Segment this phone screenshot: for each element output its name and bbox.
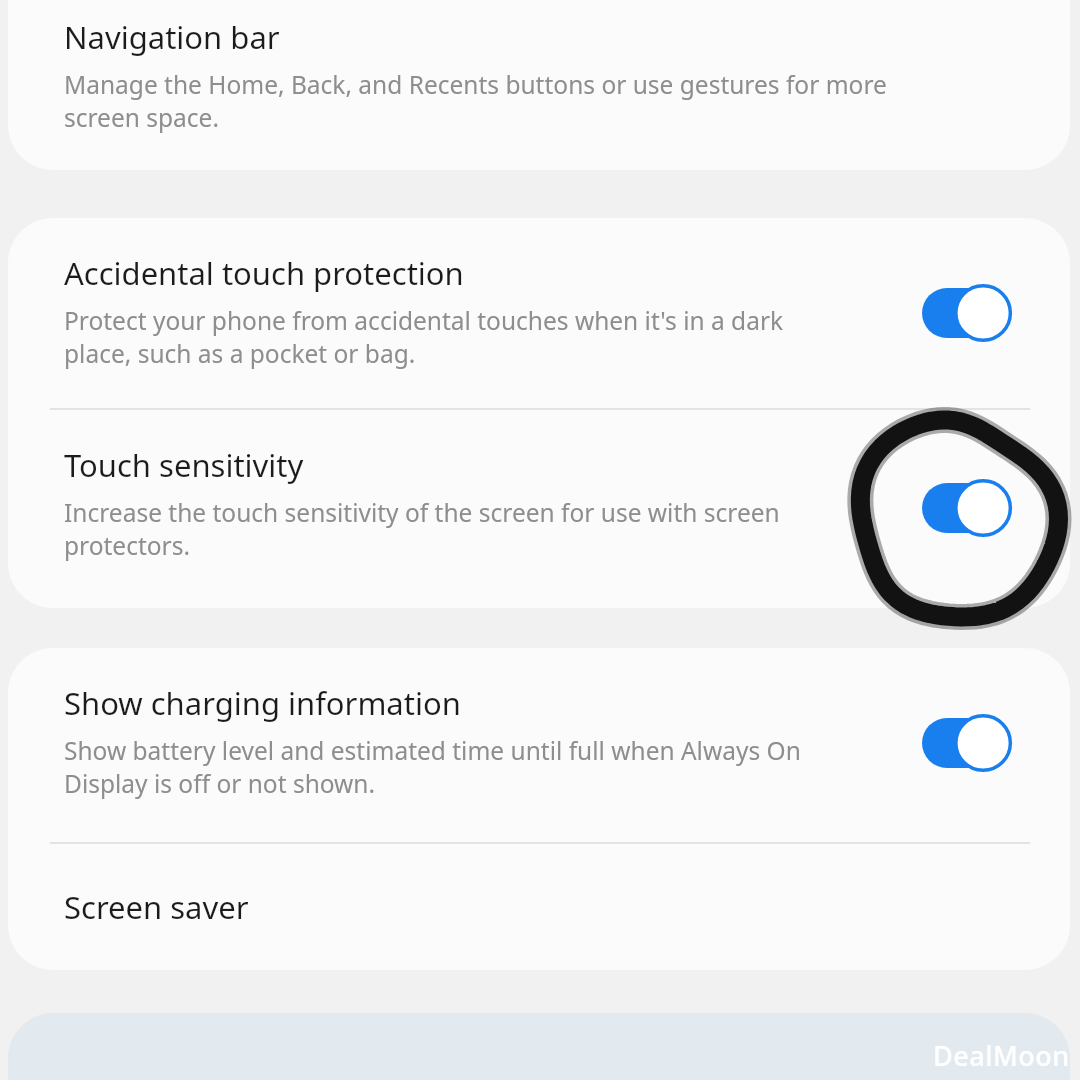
button[interactable]: Toggle, on [908, 709, 1026, 777]
staticText: Navigation bar [64, 16, 280, 58]
button[interactable]: Navigation bar [8, 0, 1070, 170]
button[interactable]: Accidental touch protection [8, 218, 1070, 408]
staticText: DealMoon [933, 1037, 1070, 1074]
button[interactable] [8, 1013, 1070, 1080]
staticText: Show battery level and estimated time un… [64, 734, 801, 800]
button[interactable]: Touch sensitivity [8, 410, 1070, 608]
staticText: Protect your phone from accidental touch… [64, 304, 784, 370]
staticText: Manage the Home, Back, and Recents butto… [64, 68, 887, 134]
staticText: Show charging information [64, 682, 461, 724]
staticText: Increase the touch sensitivity of the sc… [64, 496, 780, 562]
button[interactable]: Toggle, on [908, 474, 1026, 542]
button[interactable]: Toggle, on [908, 279, 1026, 347]
staticText: Accidental touch protection [64, 252, 464, 294]
staticText: Screen saver [64, 886, 249, 928]
button[interactable]: Show charging information [8, 648, 1070, 842]
button[interactable]: Screen saver [8, 844, 1070, 970]
staticText: Touch sensitivity [64, 444, 304, 486]
